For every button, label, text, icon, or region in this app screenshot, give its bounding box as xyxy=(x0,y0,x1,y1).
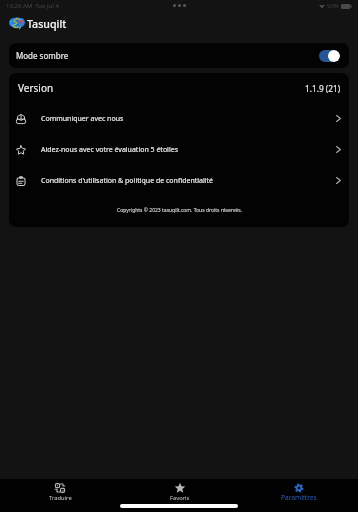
staticText: Tasuqilt xyxy=(27,17,67,31)
staticText: 93% xyxy=(327,2,339,10)
staticText: 10:26 AM Tue Jul 4 xyxy=(6,2,59,10)
staticText: Paramètres xyxy=(281,493,317,502)
staticText: Favoris xyxy=(170,494,190,502)
other: Paramètres xyxy=(294,483,304,493)
staticText: Version xyxy=(18,81,54,95)
button[interactable]: Communiquer avec nous xyxy=(9,103,349,134)
button[interactable]: Paramètres xyxy=(239,479,358,502)
other: Favoris xyxy=(175,483,185,493)
staticText: Mode sombre xyxy=(16,50,69,61)
button[interactable]: Conditions d'utilisation & politique de … xyxy=(9,165,349,196)
other: Traduire xyxy=(55,483,65,493)
button[interactable]: Traduire xyxy=(0,479,120,502)
button[interactable]: Mode sombre xyxy=(319,50,340,62)
staticText: Traduire xyxy=(49,494,72,502)
staticText: Conditions d'utilisation & politique de … xyxy=(41,176,214,186)
button[interactable]: Favoris xyxy=(120,479,239,502)
staticText: Communiquer avec nous xyxy=(41,114,124,124)
staticText: Copyrights © 2023 tasuqilt.com. Tous dro… xyxy=(117,207,242,214)
staticText: 1.1.9 (21) xyxy=(305,83,341,94)
staticText: Aidez-nous avec votre évaluation 5 étoil… xyxy=(41,145,179,155)
button[interactable]: Mode sombre xyxy=(9,43,349,68)
button[interactable]: Aidez-nous avec votre évaluation 5 étoil… xyxy=(9,134,349,165)
